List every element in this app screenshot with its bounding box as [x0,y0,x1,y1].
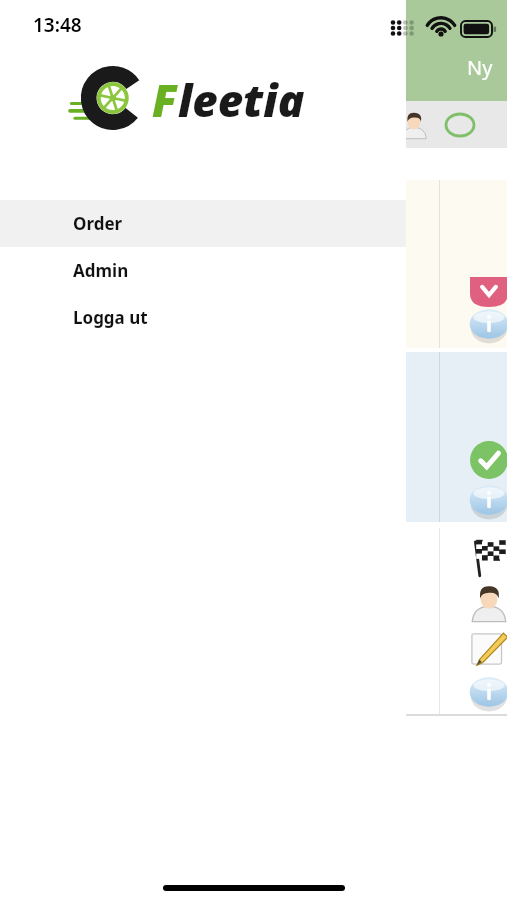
staticText: Ny [467,54,493,81]
button[interactable]: Driver [400,111,428,139]
button[interactable]: Status [444,109,476,141]
staticText: leetia [178,70,305,126]
button[interactable]: Expand [469,272,507,312]
button[interactable]: Done [406,352,507,522]
button[interactable]: Order [0,200,406,247]
staticText: Logga ut [73,306,148,329]
button[interactable]: Driver [468,582,507,624]
staticText: 13:48 [33,12,82,38]
staticText: Admin [73,259,129,282]
button[interactable]: Finish [468,536,507,578]
staticText: Order [73,212,123,235]
button[interactable]: Ny [406,0,507,101]
staticText: F [152,70,178,126]
button[interactable]: Information [467,670,507,714]
button[interactable]: Done [467,438,507,482]
button[interactable]: Logga ut [0,294,406,341]
button[interactable]: Information [467,302,507,346]
button[interactable]: Admin [0,247,406,294]
button[interactable]: Information [467,478,507,522]
button[interactable]: Expand [406,180,507,348]
button[interactable]: Finish [406,528,507,714]
button[interactable]: Edit [468,628,507,670]
